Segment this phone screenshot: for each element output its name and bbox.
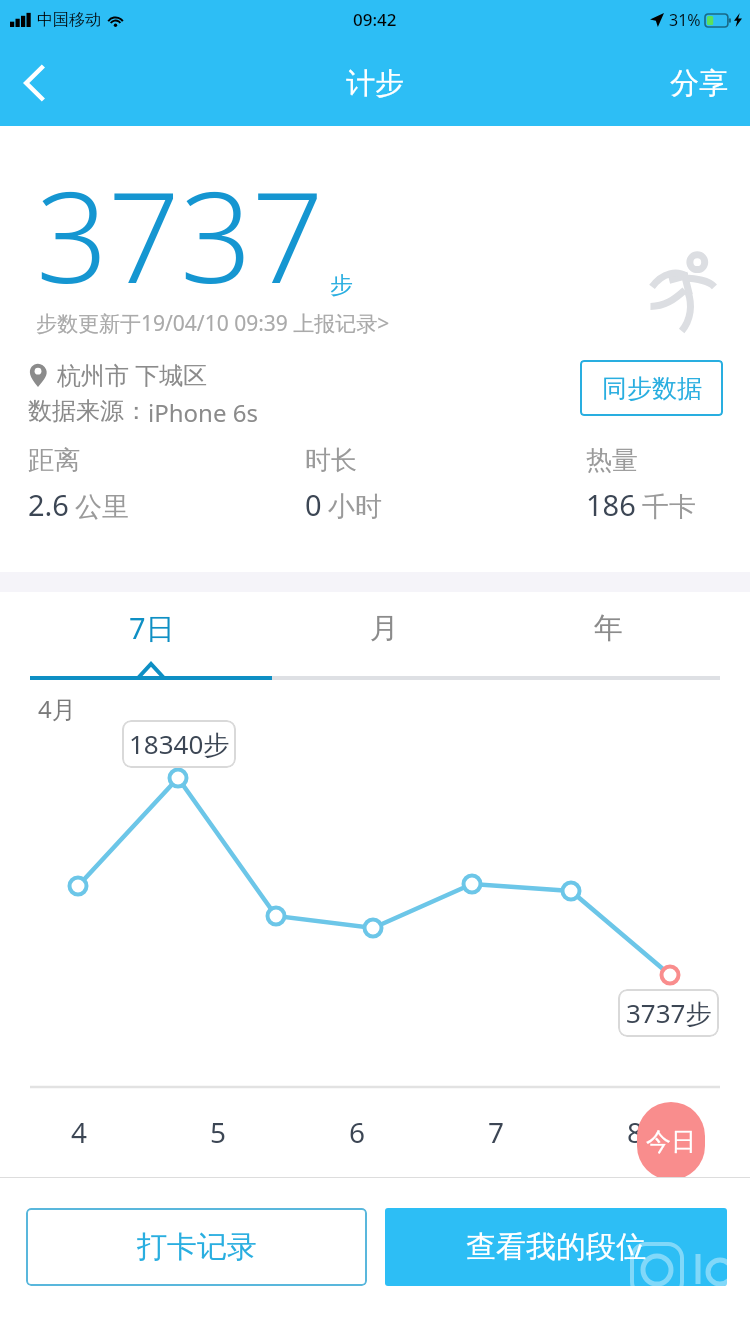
staticText: 7日 [129,608,175,648]
staticText: 31% [669,9,701,31]
staticText: 今日 [646,1126,696,1157]
staticText: 18340步 [129,726,230,762]
staticText: 计步 [346,65,404,102]
staticText: 年 [594,610,623,647]
button[interactable]: 7日 [30,592,273,664]
staticText: 同步数据 [602,373,702,404]
staticText: 小时 [328,490,382,524]
staticText: iPhone 6s [148,396,258,429]
staticText: 步数更新于19/04/10 09:39 上报记录> [36,309,390,338]
staticText: 3737步 [626,995,712,1031]
staticText: 中国移动 [37,10,101,30]
staticText: 8 [627,1113,644,1151]
button[interactable]: 同步数据 [580,360,723,416]
button[interactable]: 月 [273,592,496,664]
staticText: 查看我的段位 [466,1228,646,1266]
staticText: 数据来源： [28,396,148,426]
staticText: 千卡 [642,490,696,524]
button[interactable]: 年 [496,592,720,664]
button[interactable]: 打卡记录 [26,1208,367,1286]
staticText: 热量 [586,444,638,477]
staticText: 09:42 [353,8,397,31]
staticText: 时长 [305,444,357,477]
staticText: 7 [488,1113,505,1151]
staticText: 公里 [75,490,129,524]
staticText: 步 [330,271,353,300]
staticText: 杭州市 下城区 [57,358,208,391]
button[interactable]: 查看我的段位 [385,1208,727,1286]
staticText: 打卡记录 [137,1228,257,1266]
staticText: 距离 [28,444,80,477]
staticText: 5 [210,1113,227,1151]
staticText: 0 [305,485,322,524]
button[interactable]: 返回 [0,48,70,118]
staticText: 3737 [36,148,324,320]
staticText: 分享 [670,65,728,102]
staticText: 4月 [38,692,76,725]
button[interactable]: 分享 [670,65,728,102]
staticText: 6 [349,1113,366,1151]
staticText: 2.6 [28,485,69,524]
staticText: 月 [370,610,399,647]
staticText: 186 [586,485,636,524]
button[interactable]: 今日 [637,1102,705,1180]
staticText: 4 [71,1113,88,1151]
